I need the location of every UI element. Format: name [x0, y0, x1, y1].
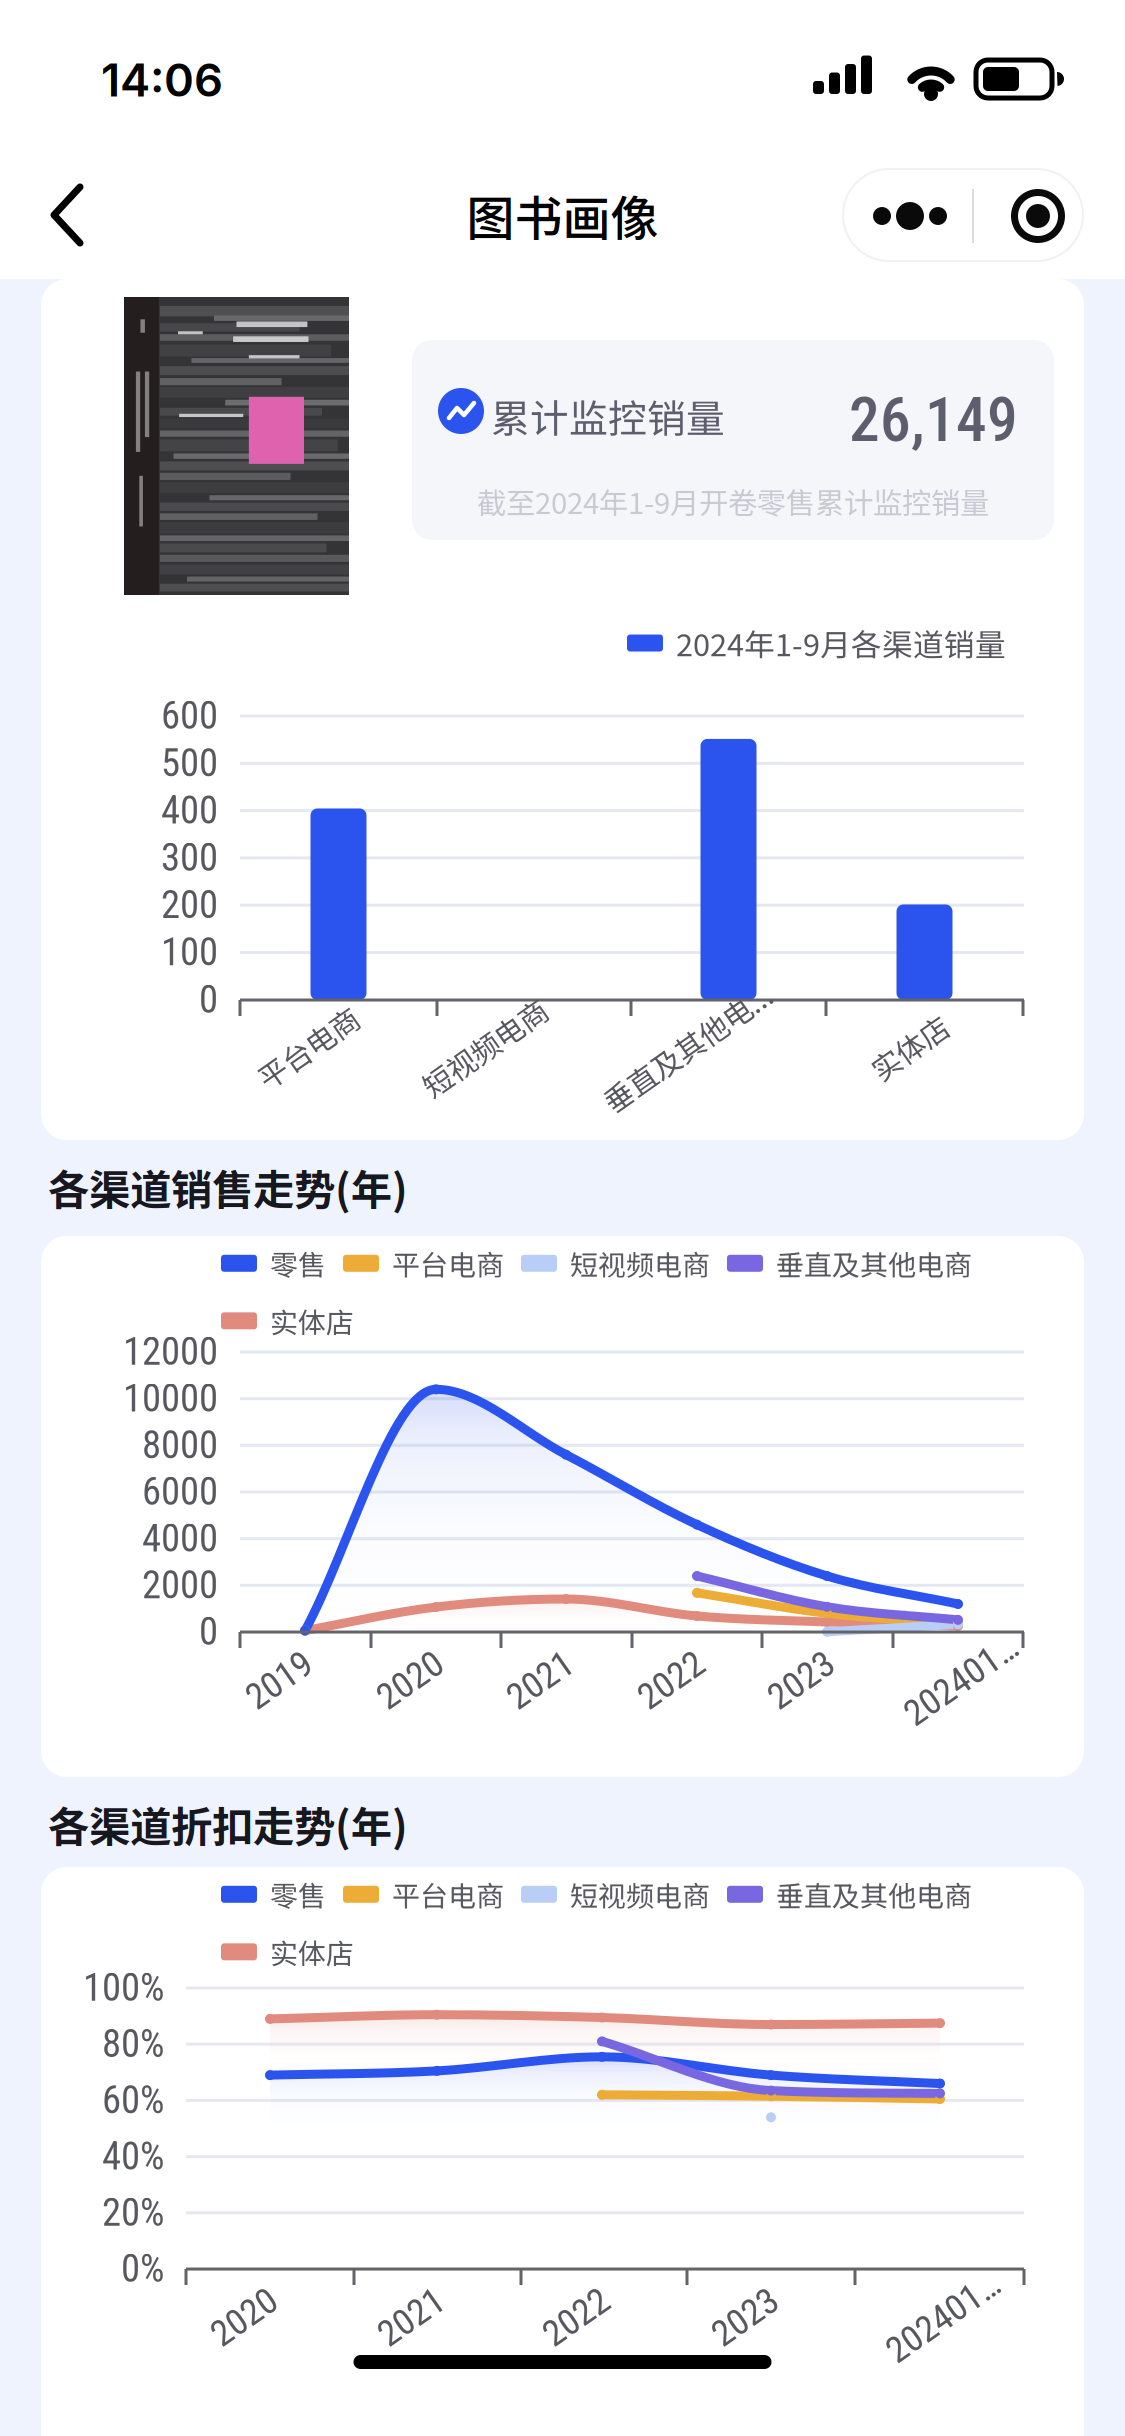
staticText: 2023 [765, 1658, 837, 1702]
staticText: 零售 [270, 1874, 326, 1914]
staticText: 图书画像 [466, 180, 658, 250]
staticText: 2000 [142, 1562, 218, 1608]
staticText: 实体店 [866, 1026, 953, 1068]
staticText: 短视频电商 [412, 1026, 557, 1068]
staticText: 2022 [635, 1658, 707, 1702]
staticText: 平台电商 [392, 1874, 504, 1914]
staticText: 8000 [142, 1422, 218, 1468]
staticText: 202401… [878, 2295, 1008, 2339]
button[interactable]: Back [22, 163, 114, 267]
staticText: 0% [121, 2246, 164, 2291]
staticText: 实体店 [270, 1300, 354, 1341]
staticText: 各渠道折扣走势(年) [48, 1794, 408, 1854]
staticText: 2022 [540, 2295, 612, 2339]
staticText: 垂直及其他电商 [776, 1243, 972, 1283]
staticText: 600 [161, 693, 218, 738]
staticText: 零售 [270, 1243, 326, 1283]
staticText: 平台电商 [392, 1243, 504, 1283]
staticText: 200 [161, 882, 218, 927]
staticText: 300 [161, 835, 218, 880]
staticText: 80% [102, 2021, 164, 2066]
staticText: 60% [102, 2077, 164, 2123]
staticText: 0 [199, 977, 218, 1022]
staticText: 2019 [243, 1658, 315, 1702]
staticText: 2023 [709, 2295, 781, 2339]
staticText: 累计监控销量 [491, 388, 725, 444]
staticText: 12000 [123, 1329, 218, 1374]
staticText: 400 [161, 788, 218, 833]
staticText: 100% [83, 1965, 164, 2010]
staticText: 2021 [375, 2295, 447, 2339]
staticText: 2020 [374, 1658, 446, 1702]
staticText: 截至2024年1-9月开卷零售累计监控销量 [477, 480, 989, 522]
staticText: 实体店 [270, 1931, 354, 1972]
staticText: 202401… [896, 1658, 1026, 1702]
staticText: 500 [161, 740, 218, 786]
staticText: 100 [161, 929, 218, 975]
staticText: 40% [102, 2134, 164, 2179]
staticText: 平台电商 [250, 1026, 366, 1068]
button[interactable]: More [843, 169, 972, 261]
staticText: 26,149 [849, 384, 1018, 456]
staticText: 2024年1-9月各渠道销量 [676, 621, 1006, 665]
staticText: 2020 [208, 2295, 280, 2339]
staticText: 0 [199, 1609, 218, 1654]
staticText: 短视频电商 [570, 1243, 710, 1283]
staticText: 短视频电商 [570, 1874, 710, 1914]
staticText: 垂直及其他电... [588, 1026, 786, 1068]
staticText: 垂直及其他电商 [776, 1874, 972, 1914]
staticText: 各渠道销售走势(年) [48, 1157, 408, 1217]
staticText: 6000 [142, 1469, 218, 1514]
staticText: 4000 [142, 1516, 218, 1561]
staticText: 10000 [123, 1376, 218, 1421]
staticText: 14:06 [101, 53, 223, 107]
staticText: 2021 [504, 1658, 576, 1702]
staticText: 20% [102, 2190, 164, 2235]
button[interactable]: Close [972, 169, 1083, 261]
